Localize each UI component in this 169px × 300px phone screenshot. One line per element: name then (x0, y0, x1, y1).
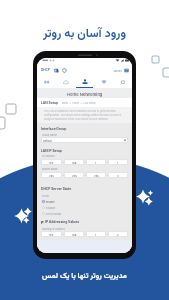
button[interactable]: 2 (108, 231, 128, 237)
staticText: Basic > Home > LAN Setup (62, 102, 96, 105)
staticText: 255 (49, 174, 54, 177)
staticText: DHCP Server State (41, 187, 72, 191)
button[interactable]: 168 (64, 231, 84, 237)
staticText: ورود آسان به روتر (0, 25, 169, 44)
staticText: The LAN IP address is the IP address you… (44, 110, 129, 121)
button[interactable]: Home (56, 77, 75, 88)
button[interactable]: default (41, 137, 128, 143)
staticText: 0 (117, 174, 119, 177)
button[interactable]: 1 (86, 231, 106, 237)
button[interactable]: Dashboard (54, 68, 59, 73)
staticText: Starting IP Address (42, 228, 65, 231)
button[interactable]: 255 (86, 172, 106, 178)
staticText: Home Networking (67, 92, 103, 97)
staticText: LAN IP Setup (41, 149, 62, 153)
staticText: Interface Group (41, 127, 67, 131)
button[interactable]: Menu (124, 68, 129, 73)
staticText: Disable (46, 206, 56, 209)
button[interactable]: 1 (108, 159, 128, 165)
button[interactable]: 0 (108, 172, 128, 178)
staticText: Group Name (42, 134, 57, 137)
staticText: admin (114, 69, 122, 72)
staticText: 168 (72, 233, 77, 236)
staticText: LAN Setup (41, 101, 59, 105)
staticText: 192 (49, 233, 54, 236)
staticText: 168 (72, 161, 77, 164)
button[interactable]: 168 (64, 159, 84, 165)
button[interactable]: Disable (42, 205, 132, 210)
staticText: Enable (46, 200, 55, 203)
staticText: 1 (95, 233, 97, 236)
staticText: 255 (94, 174, 99, 177)
staticText: Subnet Mask (42, 168, 58, 171)
staticText: 2 (117, 233, 119, 236)
button[interactable]: Security (62, 68, 67, 73)
staticText: 1 (117, 161, 119, 164)
button[interactable]: 255 (64, 172, 84, 178)
button[interactable]: 255 (41, 172, 62, 178)
button[interactable]: More (113, 77, 132, 88)
staticText: 255 (72, 174, 77, 177)
staticText: IP Addressing Values (45, 220, 80, 224)
button[interactable]: WiFi (94, 77, 113, 88)
staticText: 1 (95, 161, 97, 164)
button[interactable]: 1 (86, 159, 106, 165)
button[interactable]: Router (75, 77, 94, 88)
button[interactable]: 192 (41, 159, 62, 165)
staticText: مدیریت روتر تنها با یک لمس (0, 270, 169, 282)
staticText: DHCP (42, 195, 50, 198)
staticText: DHCP (41, 68, 50, 72)
staticText: IP Address (42, 155, 55, 158)
button[interactable]: 192 (41, 231, 62, 237)
staticText: default (43, 139, 52, 142)
button[interactable]: DHCP Relay (42, 211, 132, 216)
staticText: DHCP Relay (46, 212, 62, 215)
button[interactable]: Devices (37, 77, 56, 88)
button[interactable]: Enable (42, 199, 132, 204)
staticText: 192 (49, 161, 54, 164)
